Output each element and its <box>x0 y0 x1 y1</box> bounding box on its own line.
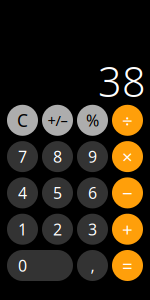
staticText: 5 <box>53 182 62 203</box>
button[interactable]: = <box>112 250 143 281</box>
staticText: , <box>90 255 94 276</box>
button[interactable]: 9 <box>77 141 108 172</box>
staticText: 7 <box>18 146 27 167</box>
button[interactable]: + <box>112 214 143 245</box>
staticText: 8 <box>53 146 62 167</box>
button[interactable]: 4 <box>7 177 38 208</box>
button[interactable]: 0 <box>7 250 73 281</box>
button[interactable]: +/– <box>42 105 73 136</box>
staticText: 9 <box>88 146 97 167</box>
button[interactable]: 8 <box>42 141 73 172</box>
button[interactable]: % <box>77 105 108 136</box>
staticText: 3 <box>88 219 97 240</box>
staticText: ÷ <box>122 108 133 133</box>
button[interactable]: ÷ <box>112 105 143 136</box>
button[interactable]: 7 <box>7 141 38 172</box>
staticText: × <box>122 144 133 169</box>
staticText: +/– <box>47 111 67 130</box>
staticText: 6 <box>88 182 97 203</box>
staticText: − <box>122 180 133 205</box>
staticText: = <box>122 253 133 278</box>
button[interactable]: , <box>77 250 108 281</box>
button[interactable]: 3 <box>77 214 108 245</box>
staticText: % <box>86 110 99 131</box>
staticText: 4 <box>18 182 27 203</box>
staticText: 0 <box>18 255 27 276</box>
button[interactable]: 2 <box>42 214 73 245</box>
staticText: C <box>17 109 28 132</box>
staticText: 38 <box>98 54 146 108</box>
staticText: 1 <box>18 219 27 240</box>
staticText: + <box>122 217 133 242</box>
button[interactable]: 6 <box>77 177 108 208</box>
button[interactable]: 1 <box>7 214 38 245</box>
button[interactable]: × <box>112 141 143 172</box>
button[interactable]: − <box>112 177 143 208</box>
button[interactable]: 5 <box>42 177 73 208</box>
button[interactable]: C <box>7 105 38 136</box>
staticText: 2 <box>53 219 62 240</box>
